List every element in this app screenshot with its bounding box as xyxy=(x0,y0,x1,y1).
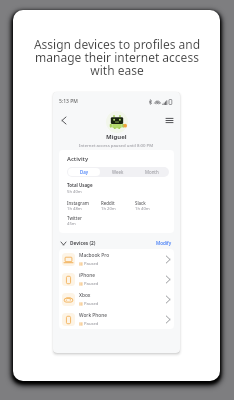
staticText: Twitter xyxy=(67,215,82,221)
staticText: Reddit xyxy=(101,200,115,206)
staticText: Devices (2) xyxy=(70,240,96,247)
staticText: 5h 40m xyxy=(67,189,82,195)
button[interactable]: Menu xyxy=(164,115,175,126)
staticText: Paused xyxy=(84,301,99,307)
button[interactable]: Week xyxy=(101,167,135,177)
staticText: Total Usage xyxy=(67,182,93,188)
staticText: Day xyxy=(80,169,89,175)
button[interactable]: Month xyxy=(135,167,169,177)
staticText: 1h 20m xyxy=(101,206,116,212)
staticText: Instagram xyxy=(67,200,89,206)
staticText: 1h 48m xyxy=(67,206,82,212)
button[interactable]: Day xyxy=(68,168,100,176)
staticText: Macbook Pro xyxy=(79,252,110,259)
staticText: Work Phone xyxy=(79,312,107,319)
staticText: Paused xyxy=(84,261,99,267)
staticText: Paused xyxy=(84,321,99,327)
button[interactable]: Modify xyxy=(156,240,172,246)
staticText: 1h 40m xyxy=(135,206,150,212)
staticText: Week xyxy=(112,169,124,175)
button[interactable]: Macbook Pro xyxy=(59,249,174,269)
staticText: iPhone xyxy=(79,272,95,279)
staticText: Xbox xyxy=(79,292,91,299)
button[interactable]: Xbox xyxy=(59,289,174,309)
staticText: 5:13 PM xyxy=(59,98,78,105)
staticText: Slack xyxy=(135,200,146,206)
staticText: Activity xyxy=(67,155,89,163)
button[interactable]: iPhone xyxy=(59,269,174,289)
staticText: Internet access paused until 8:00 PM xyxy=(79,142,154,148)
staticText: Miguel xyxy=(106,133,127,141)
button[interactable]: Work Phone xyxy=(59,309,174,329)
staticText: 45m xyxy=(67,221,76,227)
staticText: Paused xyxy=(84,281,99,287)
button[interactable]: Back xyxy=(58,115,69,126)
staticText: Month xyxy=(145,169,159,175)
staticText: Assign devices to profiles and manage th… xyxy=(26,36,208,79)
